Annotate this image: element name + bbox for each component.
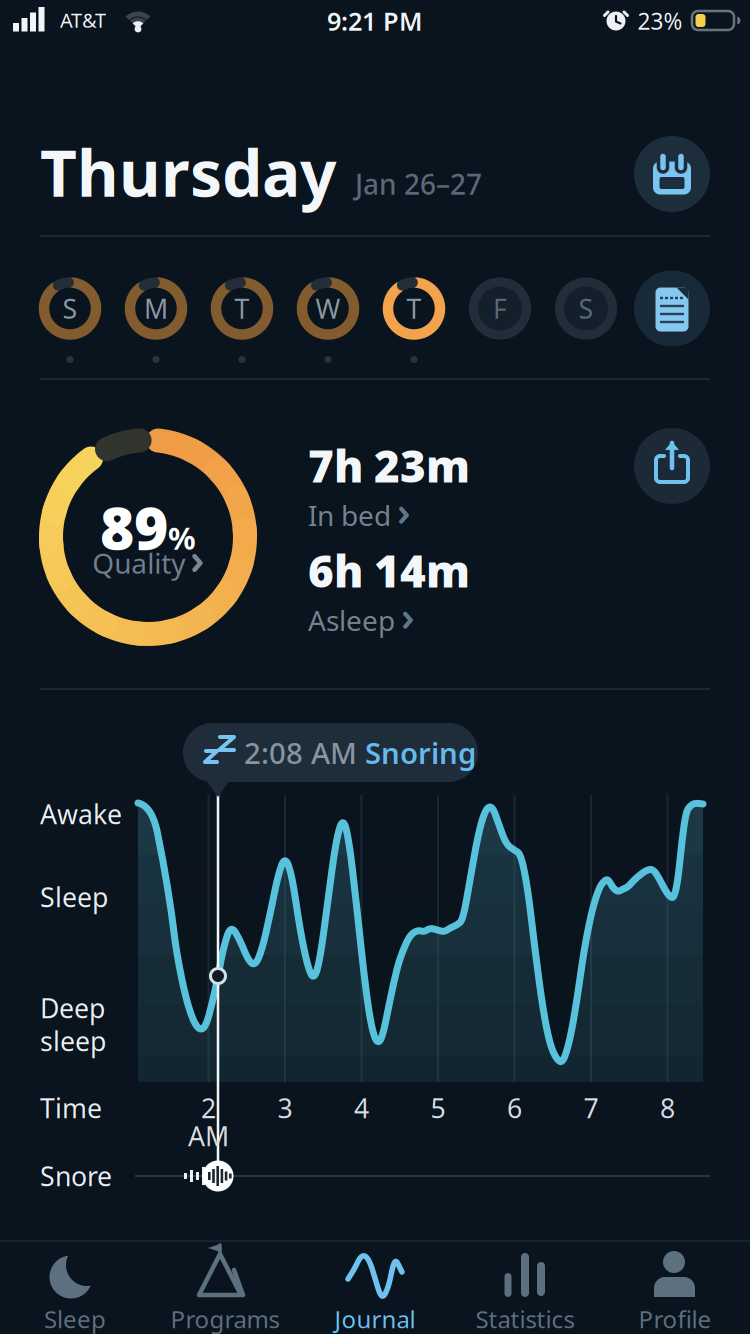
button[interactable]: M [114, 266, 198, 350]
staticText: W [315, 291, 340, 326]
staticText: Awake [40, 796, 122, 832]
staticText: Sleep [40, 879, 108, 915]
staticText: Time [40, 1090, 102, 1126]
button[interactable]: 6h 14m [308, 541, 548, 639]
button[interactable]: S [544, 266, 628, 350]
button[interactable]: Calendar [634, 136, 710, 212]
staticText: 89% [100, 488, 196, 566]
button[interactable]: W [286, 266, 370, 350]
button[interactable]: Programs [150, 1240, 300, 1334]
staticText: Programs [170, 1303, 279, 1334]
staticText: T [406, 291, 421, 326]
staticText: 2 [201, 1090, 216, 1126]
staticText: sleep [40, 1023, 106, 1059]
staticText: 4 [354, 1090, 369, 1126]
staticText: Journal [334, 1303, 415, 1334]
staticText: 7h 23m [308, 436, 470, 495]
staticText: M [144, 291, 168, 326]
button[interactable]: 7h 23m [308, 436, 548, 534]
staticText: In bed [308, 497, 391, 534]
staticText: AM [188, 1118, 229, 1154]
staticText: S [62, 291, 77, 326]
staticText: F [493, 291, 507, 326]
button[interactable]: T [372, 266, 456, 350]
staticText: Jan 26–27 [355, 165, 482, 203]
button[interactable]: T [200, 266, 284, 350]
staticText: 6h 14m [308, 541, 470, 600]
staticText: 6 [507, 1090, 522, 1126]
staticText: S [578, 291, 593, 326]
staticText: 23% [637, 6, 682, 36]
staticText: Asleep [308, 602, 395, 639]
button[interactable]: Sleep quality [38, 427, 258, 647]
staticText: Snore [40, 1158, 112, 1194]
button[interactable]: Sleep [0, 1240, 150, 1334]
staticText: Snoring [365, 733, 476, 772]
button[interactable]: F [458, 266, 542, 350]
staticText: Sleep [44, 1303, 106, 1334]
staticText: 2:08 AM [244, 733, 357, 772]
staticText: 8 [660, 1090, 675, 1126]
staticText: Statistics [475, 1303, 574, 1334]
staticText: Profile [638, 1303, 711, 1334]
staticText: AT&T [60, 7, 106, 33]
staticText: 7 [583, 1090, 598, 1126]
button[interactable]: Profile [600, 1240, 750, 1334]
staticText: 5 [430, 1090, 445, 1126]
staticText: Thursday [40, 129, 337, 214]
button[interactable]: Snore playback [202, 1160, 233, 1191]
staticText: Quality [92, 544, 185, 582]
button[interactable]: S [28, 266, 112, 350]
staticText: T [234, 291, 249, 326]
button[interactable]: Statistics [450, 1240, 600, 1334]
button[interactable]: Sleep notes [634, 270, 710, 346]
button[interactable]: Journal [300, 1240, 450, 1334]
staticText: 9:21 PM [327, 4, 423, 38]
staticText: Deep [40, 990, 105, 1026]
button[interactable]: Share [634, 428, 710, 504]
button[interactable]: 2:08 AM [183, 723, 478, 782]
staticText: 3 [277, 1090, 292, 1126]
